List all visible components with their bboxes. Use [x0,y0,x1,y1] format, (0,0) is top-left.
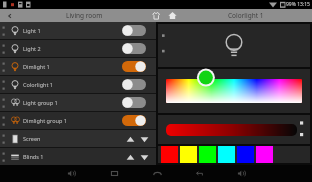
staticText: 99% 13:15 [286,1,310,8]
button[interactable]: Up [123,132,137,146]
button[interactable] [121,114,147,127]
button[interactable]: Light 1 [0,22,156,39]
button[interactable]: Back [178,165,220,182]
staticText: Light group 1 [23,99,121,106]
button[interactable]: Recents [93,165,136,182]
button[interactable] [121,24,147,37]
staticText: Blinds 1 [23,153,123,160]
staticText: Colorlight 1 [228,11,264,20]
button[interactable] [166,79,302,103]
button[interactable]: Home [164,9,180,22]
button[interactable]: Up [123,150,137,164]
staticText: Colorlight 1 [23,81,121,88]
button[interactable]: Light 2 [0,40,156,57]
button[interactable]: Dimlight 1 [0,58,156,75]
staticText: Dimlight 1 [23,63,121,70]
staticText: Dimlight group 1 [23,117,121,124]
button[interactable] [121,42,147,55]
button[interactable]: Back [0,9,20,22]
button[interactable] [121,78,147,91]
button[interactable] [166,124,297,136]
button[interactable] [121,96,147,109]
button[interactable]: Home [136,165,178,182]
staticText: Living room [66,11,103,20]
staticText: Light 2 [23,45,121,52]
staticText: Light 1 [23,27,121,34]
button[interactable]: Blinds 1 [0,148,156,165]
button[interactable] [158,24,310,67]
button[interactable]: Scenes [148,9,164,22]
button[interactable]: Down [137,132,151,146]
button[interactable]: Colorlight 1 [0,76,156,93]
button[interactable]: Volume up [220,165,262,182]
button[interactable]: Screen [0,130,156,147]
button[interactable]: Down [137,150,151,164]
button[interactable]: Dimlight group 1 [0,112,156,129]
button[interactable] [121,60,147,73]
button[interactable]: Volume down [50,165,93,182]
staticText: Screen [23,135,123,142]
button[interactable]: Light group 1 [0,94,156,111]
